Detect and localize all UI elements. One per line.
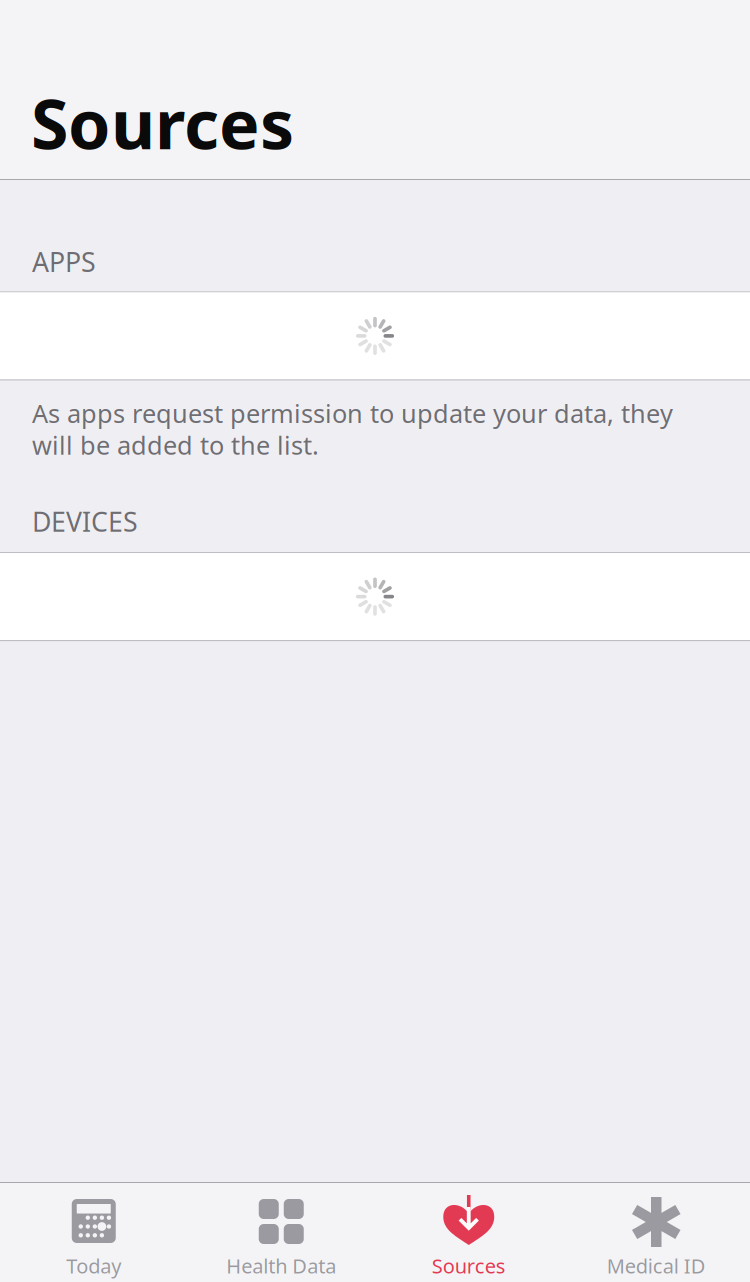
staticText: As apps request permission to update you…	[32, 396, 673, 462]
staticText: Sources	[31, 78, 294, 168]
button[interactable]: Medical ID	[562, 1182, 750, 1282]
staticText: DEVICES	[32, 504, 138, 539]
button[interactable]: Sources	[375, 1182, 562, 1282]
button[interactable]: Today	[0, 1182, 187, 1282]
staticText: Sources	[432, 1252, 506, 1279]
staticText: APPS	[32, 244, 96, 279]
staticText: Health Data	[226, 1252, 336, 1279]
staticText: Today	[66, 1252, 121, 1279]
button[interactable]: Health Data	[187, 1182, 375, 1282]
staticText: Medical ID	[607, 1252, 706, 1279]
